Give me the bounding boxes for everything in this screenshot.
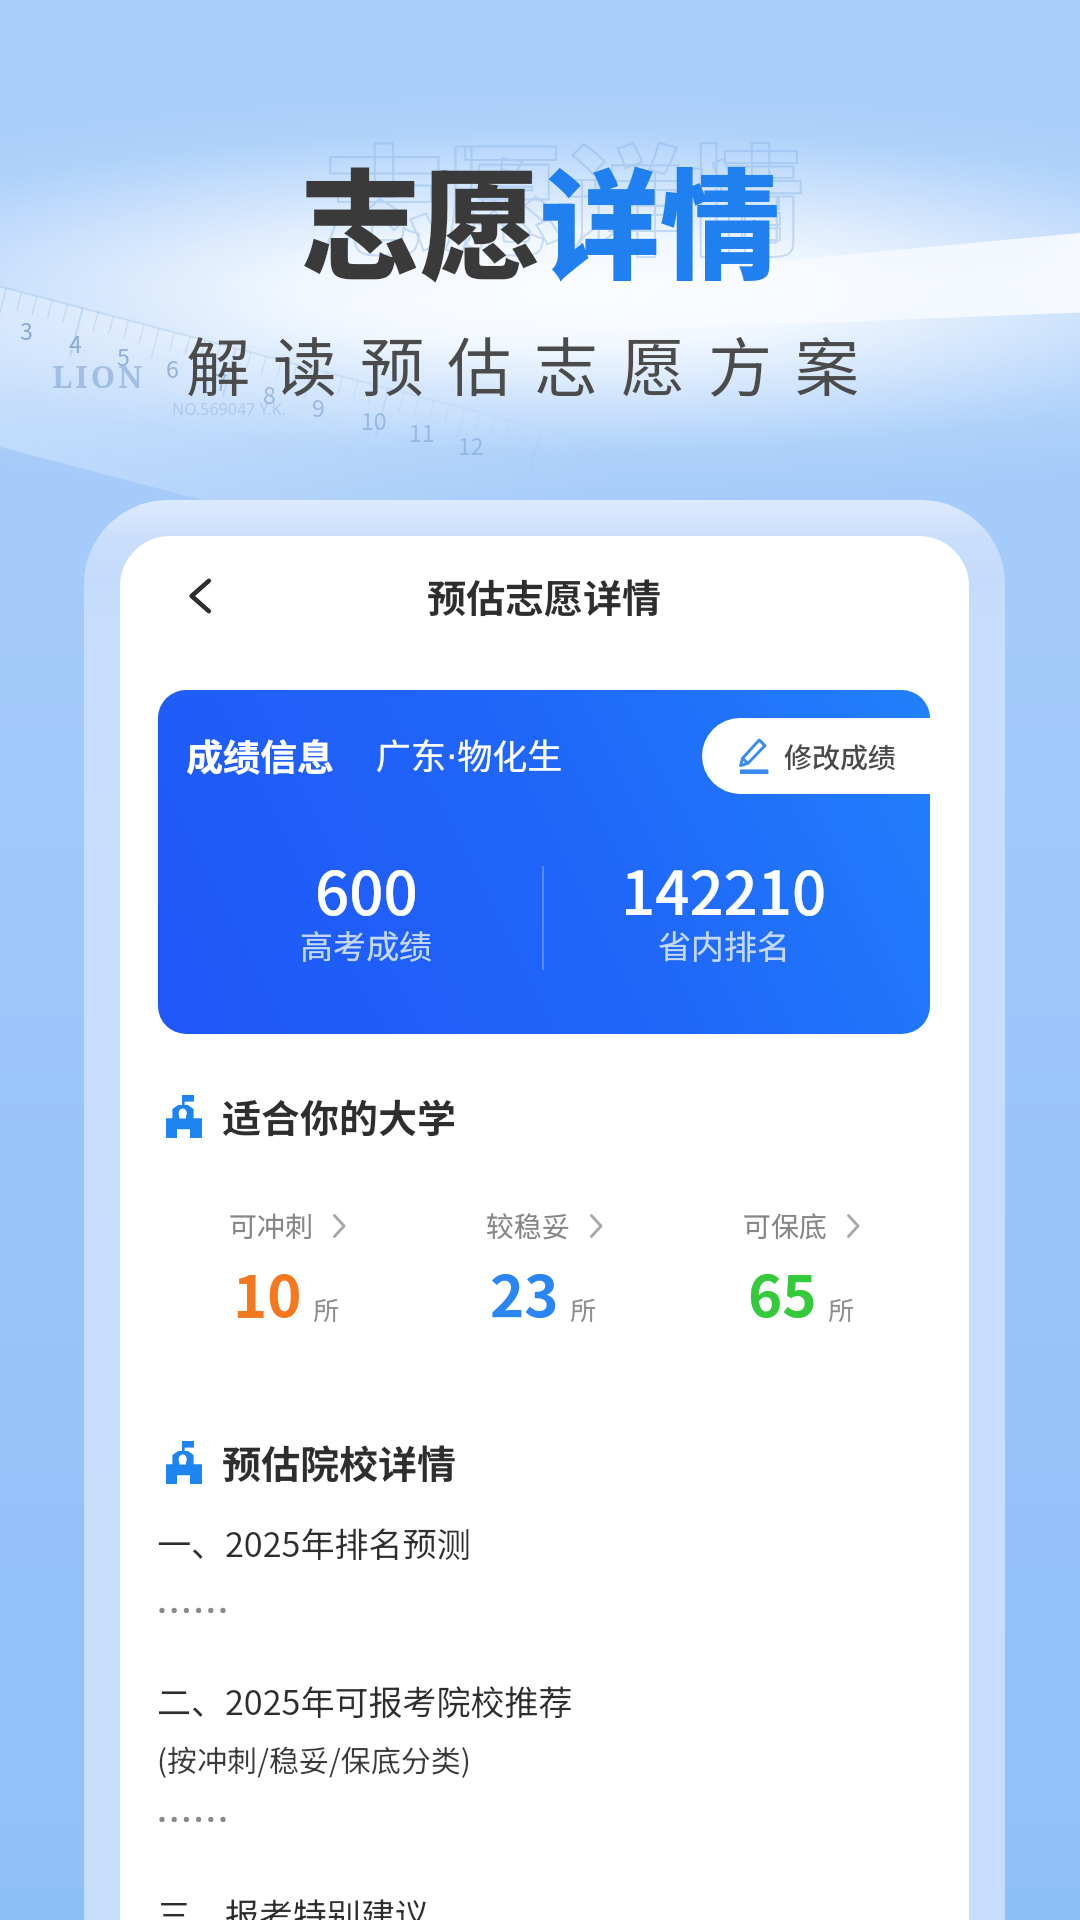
staticText: 较稳妥	[486, 1205, 571, 1246]
staticText: 所	[828, 1290, 855, 1328]
staticText: 一、2025年排名预测	[157, 1518, 471, 1567]
staticText: 预估院校详情	[222, 1434, 457, 1490]
staticText: 详情	[540, 131, 780, 305]
button[interactable]: 成绩信息	[158, 690, 930, 1034]
staticText: NO.569047 Y.K.	[172, 398, 286, 420]
staticText: 6	[166, 351, 179, 384]
button[interactable]: 可冲刺	[158, 1205, 415, 1335]
staticText: 可冲刺	[229, 1205, 314, 1246]
staticText: 11	[409, 415, 435, 448]
staticText: 65	[748, 1251, 817, 1335]
staticText: 5	[117, 339, 130, 372]
staticText: 修改成绩	[784, 736, 897, 777]
staticText: 成绩信息	[186, 728, 334, 782]
staticText: 预估志愿详情	[427, 568, 662, 624]
staticText: (按冲刺/稳妥/保底分类)	[157, 1737, 471, 1780]
staticText: 23	[490, 1251, 559, 1335]
staticText: 三、报考特别建议	[157, 1889, 429, 1920]
staticText: 二、2025年可报考院校推荐	[157, 1676, 573, 1725]
button[interactable]: 修改成绩	[702, 718, 930, 794]
staticText: 9	[312, 390, 325, 423]
staticText: 3	[20, 313, 33, 346]
staticText: 可保底	[743, 1205, 828, 1246]
staticText: 600	[315, 845, 418, 932]
staticText: 所	[570, 1290, 597, 1328]
staticText: 志愿详情	[324, 107, 804, 281]
button[interactable]: 可保底	[672, 1205, 930, 1335]
staticText: 所	[313, 1290, 340, 1328]
staticText: 适合你的大学	[222, 1088, 457, 1144]
staticText: 10	[361, 403, 387, 436]
button[interactable]: 较稳妥	[415, 1205, 672, 1335]
staticText: 广东⋅物化生	[376, 728, 563, 779]
staticText: 12	[458, 428, 484, 461]
staticText: 高考成绩	[300, 921, 432, 969]
staticText: 省内排名	[658, 921, 790, 969]
staticText: 解读预估志愿方案	[186, 317, 882, 410]
staticText: LION	[52, 355, 146, 397]
staticText: 8	[263, 377, 276, 410]
staticText: 142210	[621, 845, 827, 932]
staticText: 10	[233, 1251, 302, 1335]
staticText: 4	[69, 326, 82, 359]
button[interactable]: Back	[166, 562, 234, 630]
staticText: 7	[215, 364, 228, 397]
staticText: 志愿	[300, 131, 540, 305]
